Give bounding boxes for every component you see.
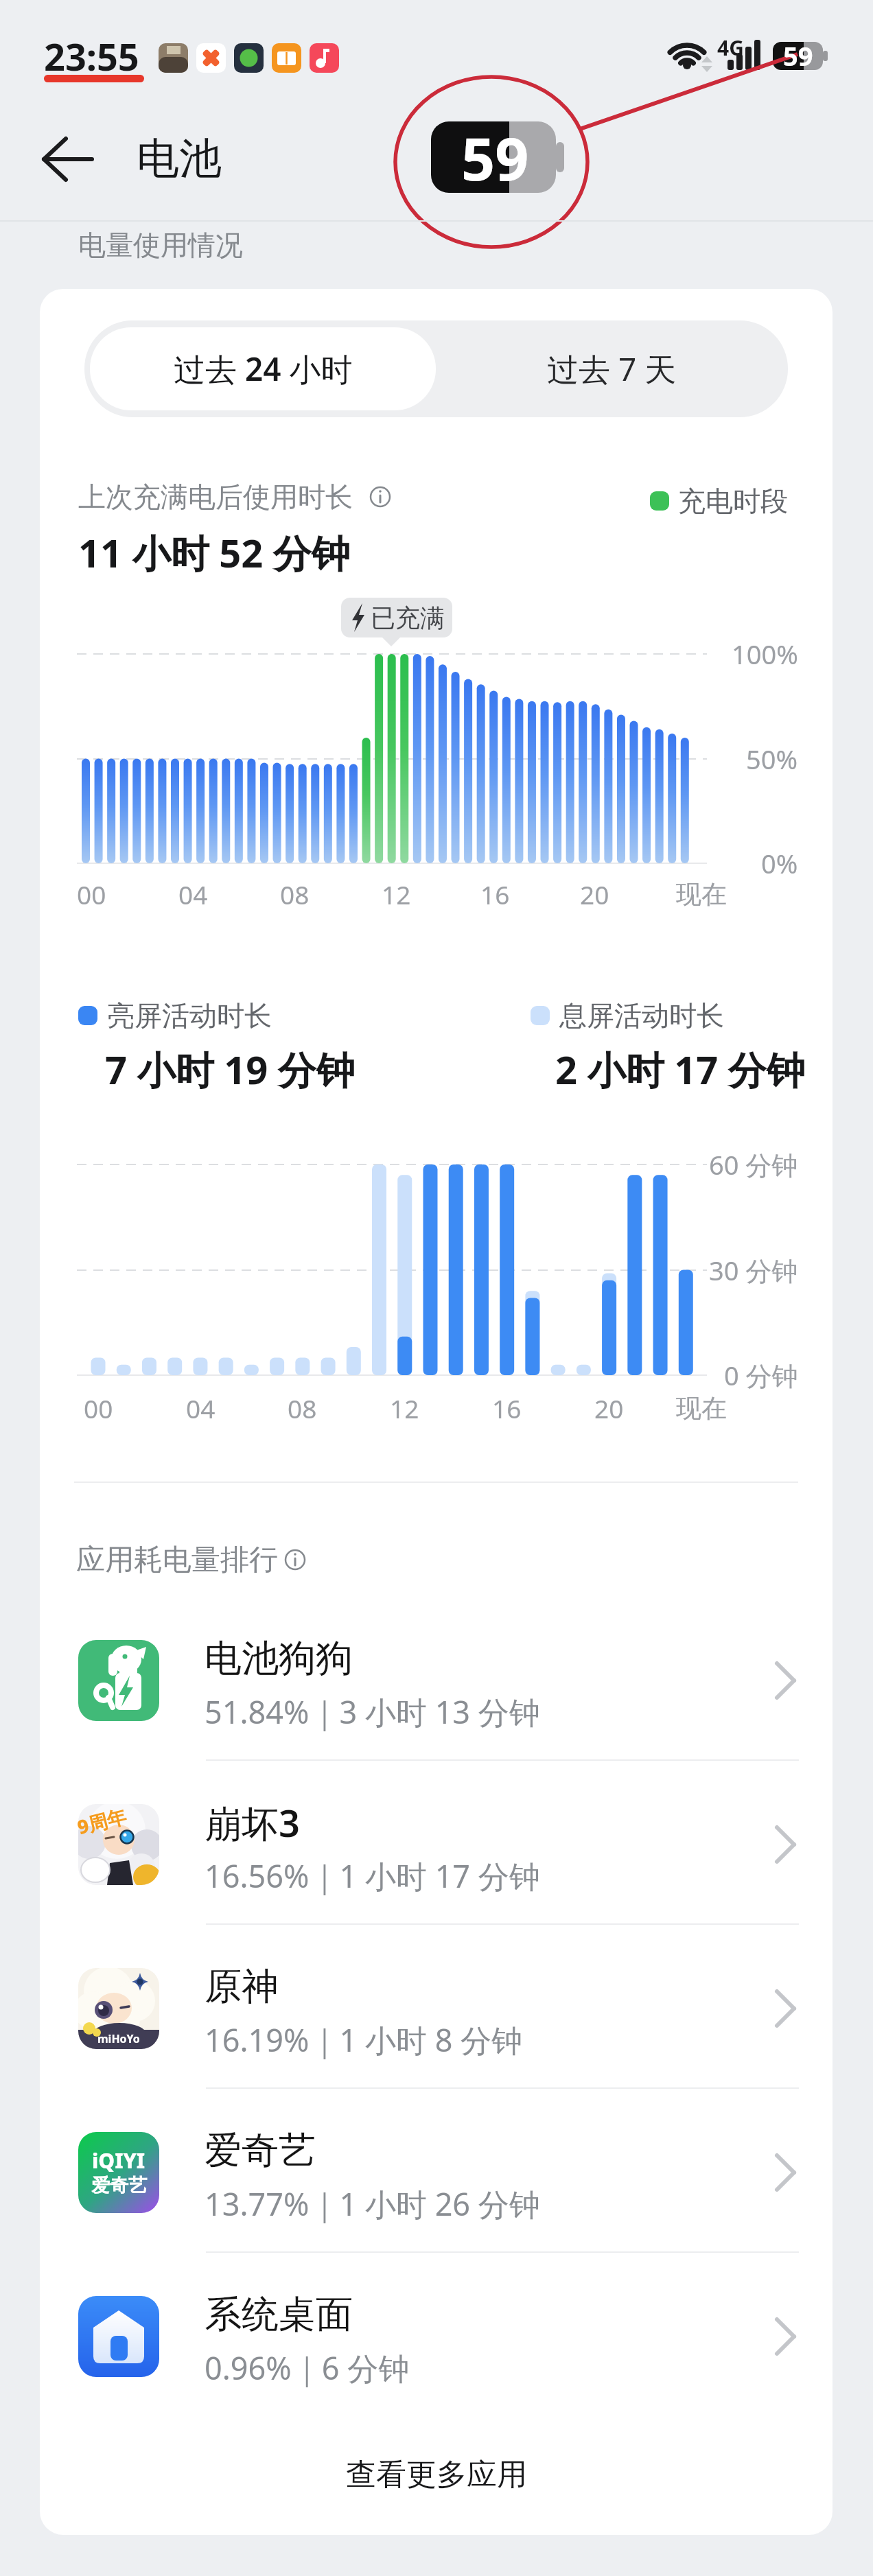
staticText: 7 小时 19 分钟 <box>105 1043 355 1095</box>
staticText: 11 小时 52 分钟 <box>78 526 350 578</box>
staticText: 4G <box>717 34 744 62</box>
staticText: 13.77%｜1 小时 26 分钟 <box>205 2183 540 2225</box>
button[interactable] <box>27 132 103 187</box>
staticText: 16 <box>492 1391 522 1425</box>
button[interactable] <box>436 320 788 417</box>
staticText: 充电时段 <box>678 484 788 518</box>
button[interactable] <box>48 2110 824 2273</box>
staticText: 51.84%｜3 小时 13 分钟 <box>205 1691 540 1733</box>
staticText: 60 分钟 <box>709 1147 798 1182</box>
staticText: iQIYI <box>92 2146 145 2175</box>
staticText: 00 <box>84 1391 113 1425</box>
staticText: 04 <box>178 877 208 911</box>
staticText: 电量使用情况 <box>78 228 243 262</box>
staticText: 爱奇艺 <box>91 2174 147 2197</box>
staticText: 2 小时 17 分钟 <box>555 1043 805 1095</box>
staticText: 息屏活动时长 <box>559 998 724 1033</box>
staticText: 崩坏3 <box>205 1797 300 1848</box>
staticText: 系统桌面 <box>205 2291 353 2338</box>
staticText: 30 分钟 <box>709 1252 798 1288</box>
staticText: 16.19%｜1 小时 8 分钟 <box>205 2019 523 2061</box>
staticText: 04 <box>186 1391 216 1425</box>
staticText: 08 <box>280 877 310 911</box>
staticText: 50% <box>746 741 798 777</box>
button[interactable] <box>288 2443 585 2506</box>
staticText: 电池狗狗 <box>205 1635 353 1682</box>
staticText: 9周年 <box>74 1802 129 1840</box>
staticText: 20 <box>580 877 609 911</box>
staticText: miHoYo <box>97 2031 140 2046</box>
staticText: 亮屏活动时长 <box>107 998 272 1033</box>
staticText: 0% <box>761 845 798 881</box>
staticText: 0.96%｜6 分钟 <box>205 2347 410 2389</box>
staticText: 23:55 <box>44 31 139 82</box>
button[interactable] <box>48 1782 824 1945</box>
staticText: 爱奇艺 <box>205 2127 316 2174</box>
button[interactable] <box>48 1618 824 1781</box>
staticText: 已充满 <box>371 602 445 633</box>
staticText: 12 <box>390 1391 419 1425</box>
staticText: 上次充满电后使用时长 <box>78 480 353 514</box>
button[interactable] <box>48 1946 824 2109</box>
staticText: 现在 <box>676 1392 727 1425</box>
staticText: 现在 <box>676 878 727 911</box>
staticText: 20 <box>594 1391 624 1425</box>
staticText: 查看更多应用 <box>346 2456 527 2494</box>
staticText: 08 <box>288 1391 317 1425</box>
staticText: 0 分钟 <box>724 1357 798 1393</box>
staticText: 电池 <box>137 132 222 185</box>
staticText: 原神 <box>205 1963 279 2010</box>
staticText: 59 <box>783 38 813 73</box>
button[interactable] <box>48 2274 824 2437</box>
button[interactable] <box>84 320 436 417</box>
staticText: 00 <box>77 877 106 911</box>
staticText: 12 <box>382 877 411 911</box>
staticText: 16.56%｜1 小时 17 分钟 <box>205 1855 540 1897</box>
staticText: 过去 7 天 <box>547 347 677 390</box>
staticText: 过去 24 小时 <box>174 347 353 390</box>
staticText: 应用耗电量排行 <box>76 1542 278 1578</box>
staticText: 100% <box>732 636 798 672</box>
staticText: 16 <box>480 877 510 911</box>
staticText: 59 <box>461 117 529 198</box>
